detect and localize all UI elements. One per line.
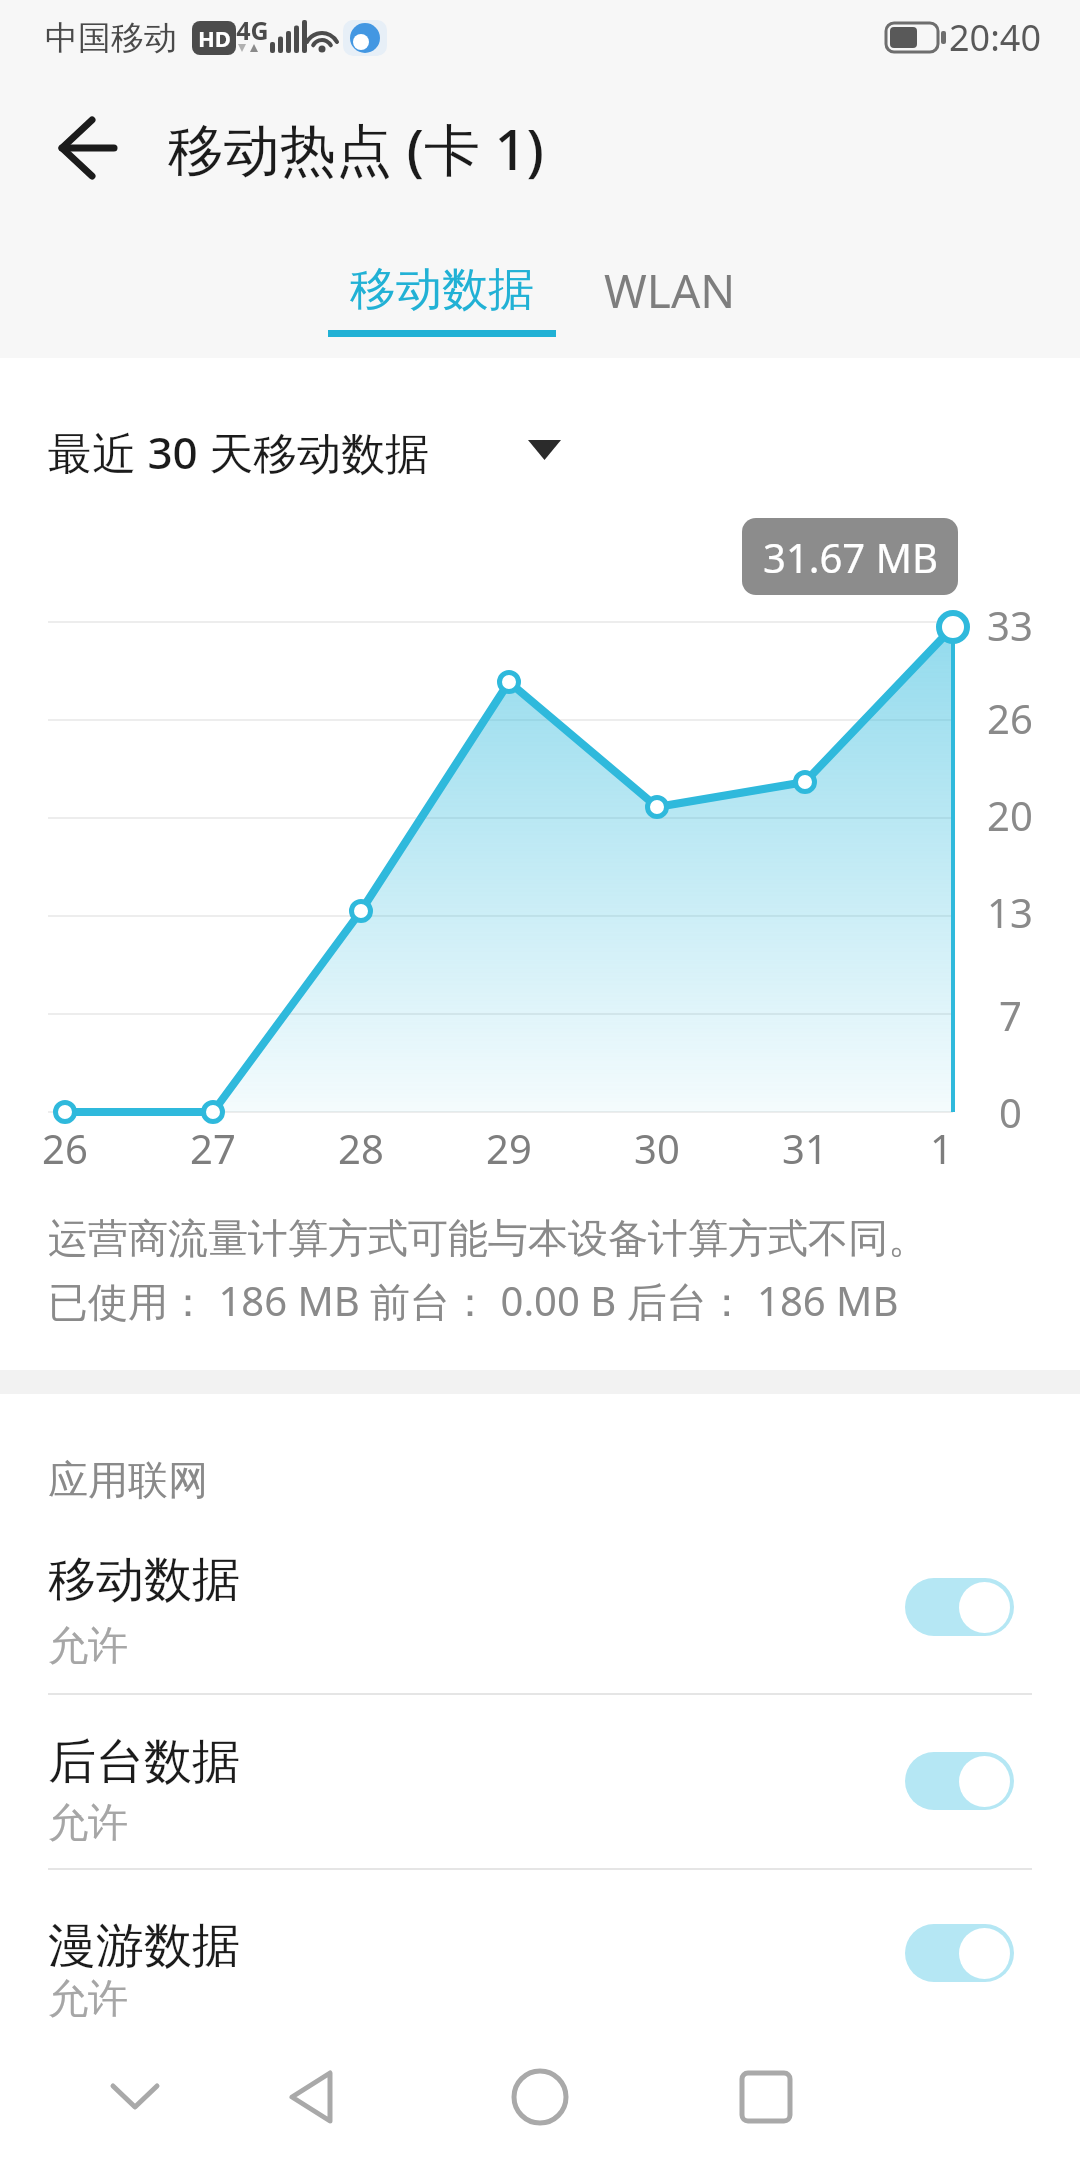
staticText: 7 xyxy=(999,988,1022,1042)
staticText: 26 xyxy=(987,691,1033,745)
staticText: 允许 xyxy=(48,1620,128,1670)
button[interactable] xyxy=(38,100,138,196)
staticText: 运营商流量计算方式可能与本设备计算方式不同。 xyxy=(48,1213,928,1263)
staticText: 28 xyxy=(338,1121,384,1175)
staticText: 26 xyxy=(42,1121,88,1175)
button[interactable] xyxy=(85,2047,185,2147)
staticText: 31 xyxy=(782,1121,828,1175)
staticText: 应用联网 xyxy=(48,1455,208,1505)
button[interactable] xyxy=(0,1869,1080,2044)
staticText: 漫游数据 xyxy=(48,1916,240,1976)
staticText: 27 xyxy=(190,1121,236,1175)
staticText: 最近 30 天移动数据 xyxy=(48,422,430,482)
button[interactable] xyxy=(260,2047,360,2147)
staticText: 移动数据 xyxy=(48,1550,240,1610)
button[interactable] xyxy=(905,1752,1014,1810)
staticText: 允许 xyxy=(48,1973,128,2023)
button[interactable]: WLAN xyxy=(570,250,770,330)
staticText: WLAN xyxy=(604,259,736,322)
staticText: 后台数据 xyxy=(48,1732,240,1792)
staticText: 29 xyxy=(486,1121,532,1175)
staticText: 4G xyxy=(236,13,269,47)
staticText: 1 xyxy=(930,1121,953,1175)
staticText: 33 xyxy=(987,598,1033,652)
staticText: HD xyxy=(198,23,231,53)
staticText: 31.67 MB xyxy=(763,530,938,584)
button[interactable] xyxy=(48,420,568,484)
button[interactable] xyxy=(905,1578,1014,1636)
button[interactable] xyxy=(715,2047,815,2147)
staticText: 20:40 xyxy=(949,13,1042,62)
button[interactable] xyxy=(905,1924,1014,1982)
staticText: 允许 xyxy=(48,1797,128,1847)
button[interactable] xyxy=(0,1508,1080,1694)
staticText: 移动数据 xyxy=(350,261,534,319)
staticText: 中国移动 xyxy=(45,17,177,59)
staticText: 30 xyxy=(634,1121,680,1175)
staticText: 已使用： 186 MB 前台： 0.00 B 后台： 186 MB xyxy=(48,1273,899,1328)
staticText: 20 xyxy=(987,788,1033,842)
button[interactable] xyxy=(0,1694,1080,1869)
staticText: 13 xyxy=(987,885,1033,939)
button[interactable]: 移动数据 xyxy=(328,250,556,330)
staticText: 0 xyxy=(999,1085,1022,1139)
staticText: 移动热点 (卡 1) xyxy=(168,110,545,186)
button[interactable] xyxy=(490,2047,590,2147)
